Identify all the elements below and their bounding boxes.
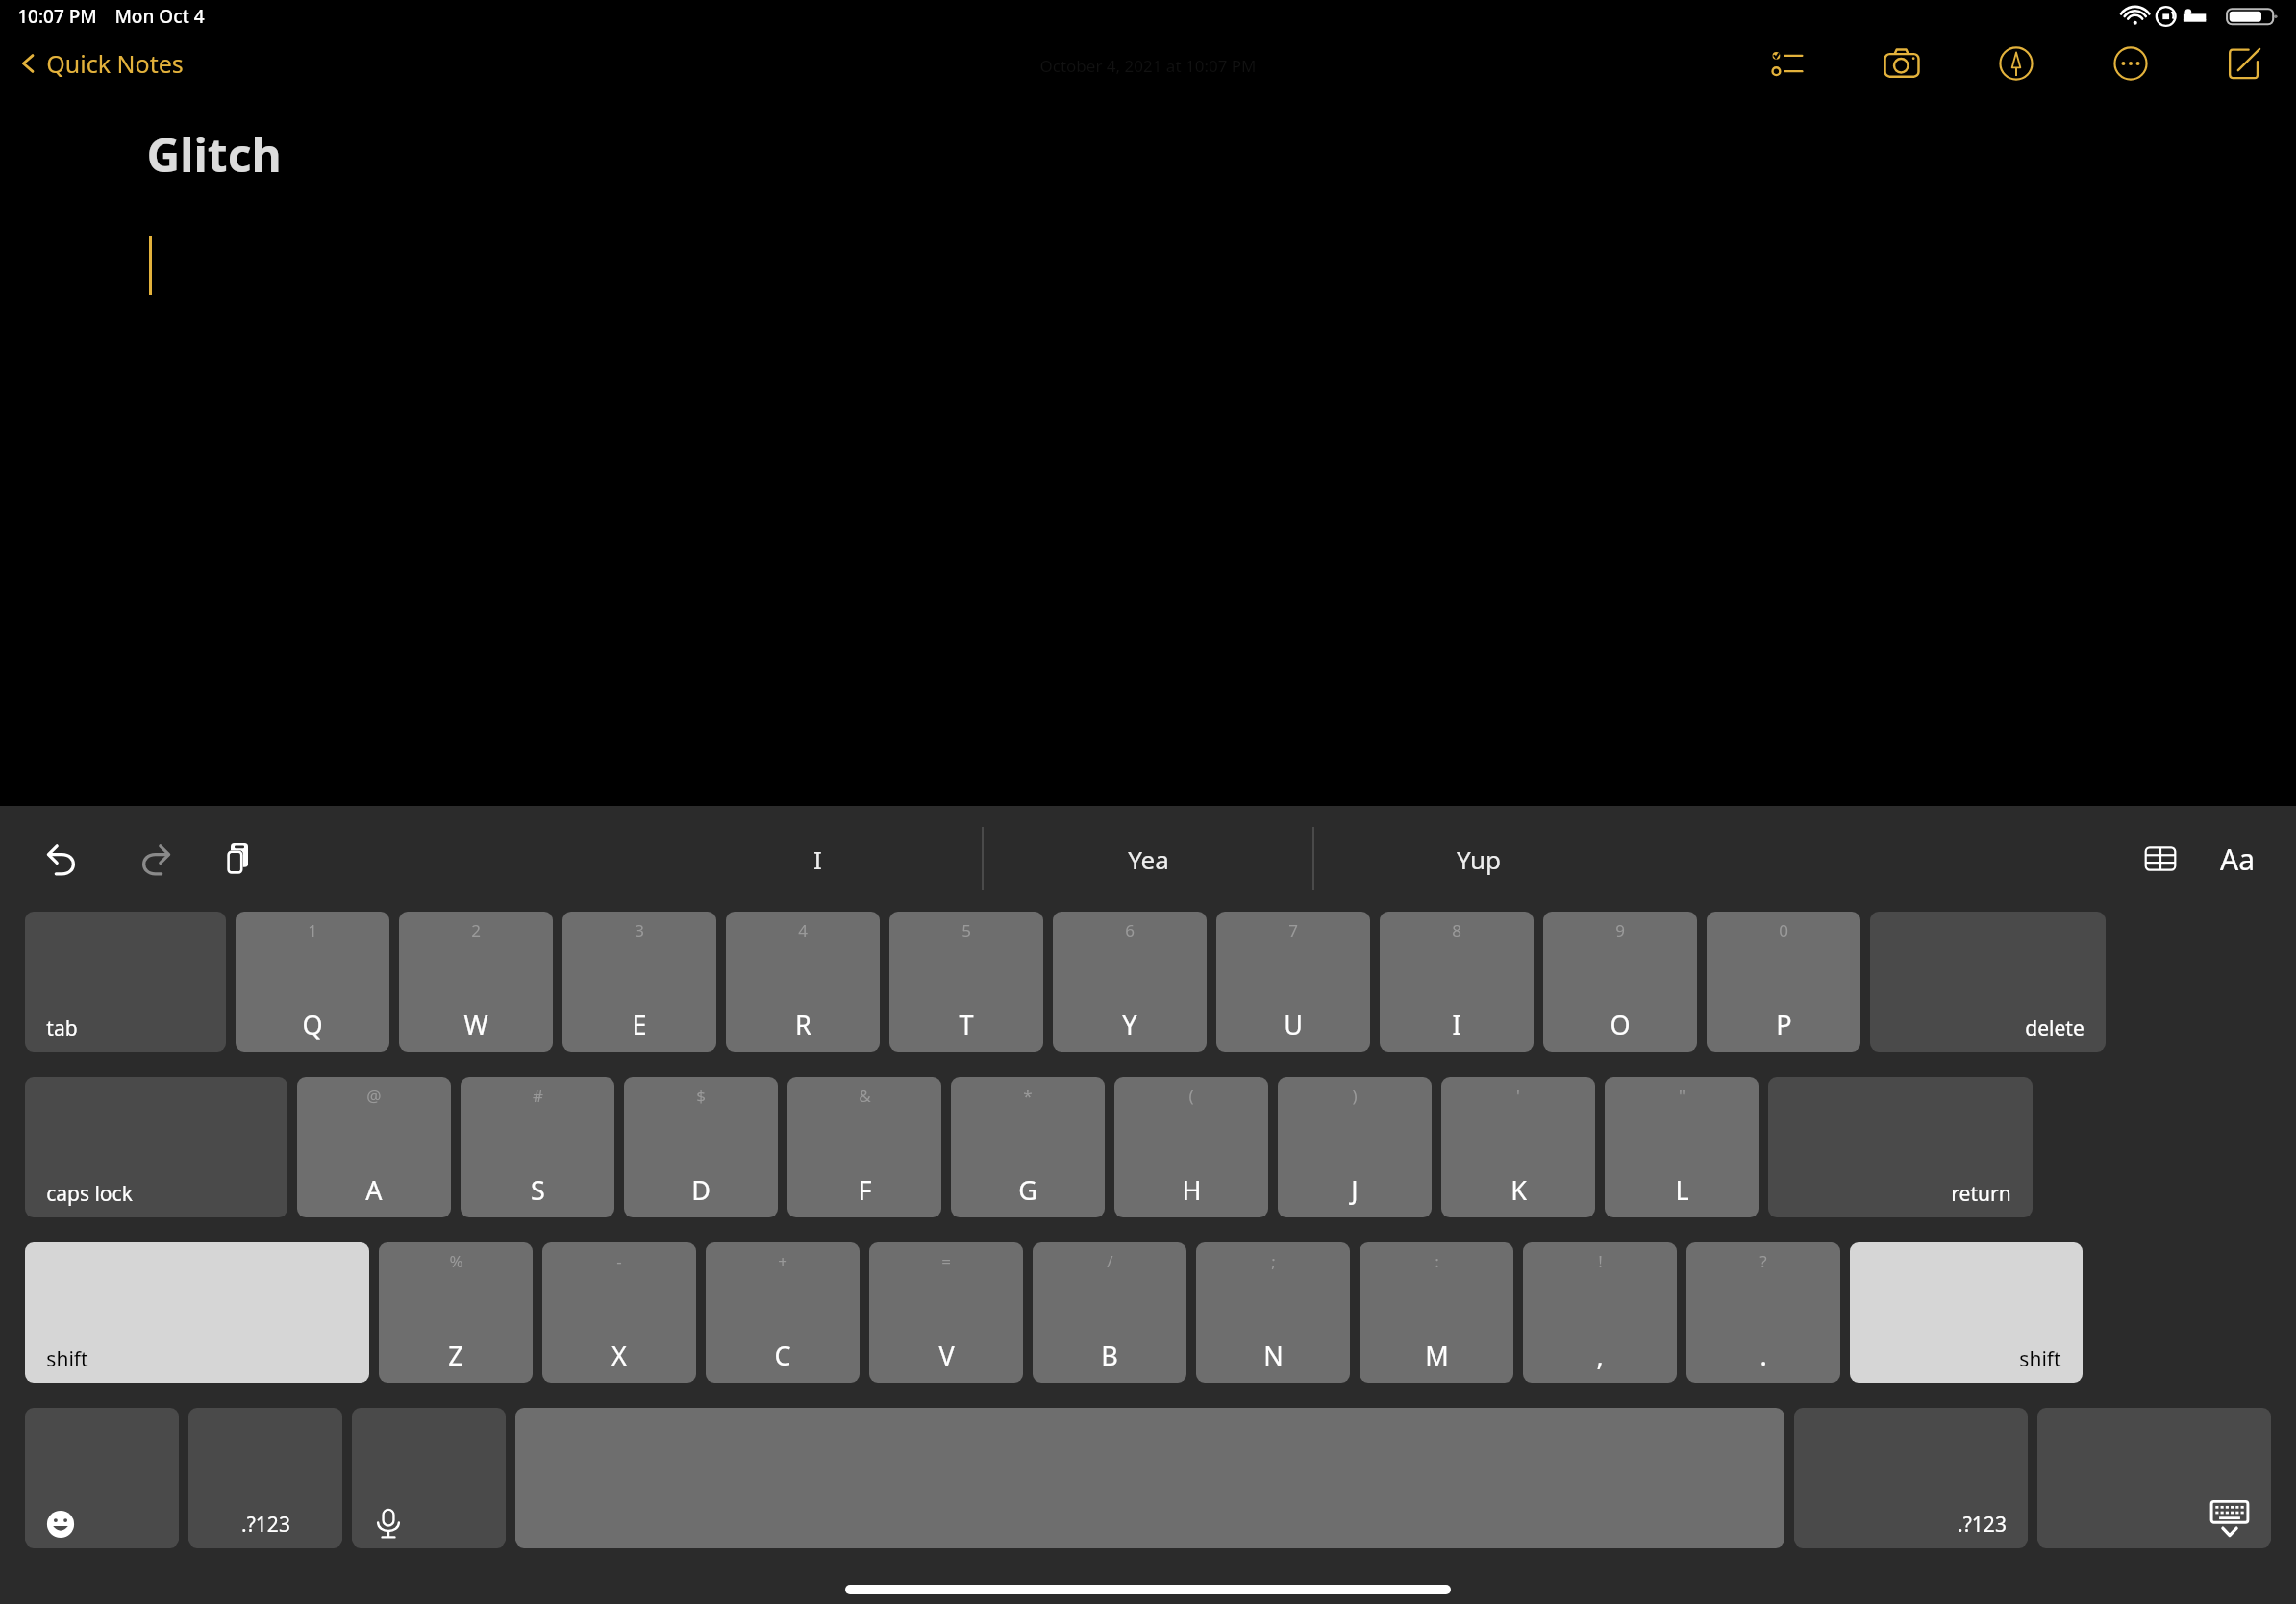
- staticText: D: [691, 1172, 711, 1208]
- staticText: 4: [798, 919, 808, 941]
- staticText: V: [938, 1338, 955, 1373]
- staticText: +: [778, 1250, 787, 1272]
- staticText: =: [941, 1250, 951, 1272]
- staticText: October 4, 2021 at 10:07 PM: [1039, 55, 1257, 77]
- staticText: 2: [471, 919, 481, 941]
- button[interactable]: .?123: [1794, 1408, 2028, 1548]
- button[interactable]: Yup: [1314, 806, 1643, 912]
- staticText: .: [1759, 1338, 1767, 1373]
- button[interactable]: +: [706, 1242, 860, 1383]
- button[interactable]: shift: [25, 1242, 369, 1383]
- staticText: caps lock: [46, 1180, 133, 1208]
- button[interactable]: Emoji: [25, 1408, 179, 1548]
- button[interactable]: tab: [25, 912, 226, 1052]
- staticText: !: [1598, 1250, 1603, 1272]
- staticText: Q: [302, 1007, 323, 1042]
- staticText: K: [1510, 1172, 1527, 1208]
- button[interactable]: $: [624, 1077, 778, 1217]
- staticText: $: [696, 1085, 706, 1107]
- staticText: 0: [1779, 919, 1788, 941]
- button[interactable]: -: [542, 1242, 696, 1383]
- button[interactable]: 7: [1216, 912, 1370, 1052]
- staticText: S: [531, 1172, 545, 1208]
- button[interactable]: Dictation: [352, 1408, 506, 1548]
- button[interactable]: !: [1523, 1242, 1677, 1383]
- staticText: F: [858, 1172, 872, 1208]
- staticText: E: [632, 1007, 647, 1042]
- button[interactable]: :: [1360, 1242, 1513, 1383]
- staticText: Glitch: [146, 123, 282, 186]
- staticText: tab: [46, 1015, 78, 1042]
- button[interactable]: Quick Notes: [15, 43, 187, 84]
- button[interactable]: (: [1114, 1077, 1268, 1217]
- button[interactable]: =: [869, 1242, 1023, 1383]
- button[interactable]: 3: [562, 912, 716, 1052]
- staticText: (: [1188, 1085, 1194, 1107]
- button[interactable]: ': [1441, 1077, 1595, 1217]
- button[interactable]: 9: [1543, 912, 1697, 1052]
- button[interactable]: ;: [1196, 1242, 1350, 1383]
- staticText: -: [616, 1250, 622, 1272]
- button[interactable]: Camera: [1870, 33, 1934, 94]
- button[interactable]: 1: [236, 912, 389, 1052]
- staticText: &: [859, 1085, 871, 1107]
- button[interactable]: delete: [1870, 912, 2106, 1052]
- staticText: shift: [2019, 1345, 2061, 1373]
- staticText: %: [449, 1250, 463, 1272]
- staticText: @: [366, 1085, 382, 1107]
- button[interactable]: #: [461, 1077, 614, 1217]
- button[interactable]: Checklist: [1756, 33, 1819, 94]
- button[interactable]: %: [379, 1242, 533, 1383]
- button[interactable]: I: [653, 806, 982, 912]
- staticText: Yea: [1128, 842, 1169, 876]
- staticText: /: [1107, 1250, 1113, 1272]
- button[interactable]: More: [2099, 33, 2162, 94]
- staticText: shift: [46, 1345, 88, 1373]
- button[interactable]: ": [1605, 1077, 1759, 1217]
- button[interactable]: ): [1278, 1077, 1432, 1217]
- button[interactable]: 5: [889, 912, 1043, 1052]
- button[interactable]: shift: [1850, 1242, 2083, 1383]
- staticText: ': [1516, 1085, 1520, 1107]
- staticText: X: [611, 1338, 627, 1373]
- staticText: N: [1263, 1338, 1284, 1373]
- staticText: 1: [308, 919, 317, 941]
- button[interactable]: 0: [1707, 912, 1860, 1052]
- button[interactable]: Paste: [208, 828, 269, 890]
- staticText: #: [533, 1085, 543, 1107]
- button[interactable]: caps lock: [25, 1077, 287, 1217]
- button[interactable]: return: [1768, 1077, 2033, 1217]
- staticText: I: [813, 842, 822, 876]
- button[interactable]: ?: [1686, 1242, 1840, 1383]
- button[interactable]: 8: [1380, 912, 1534, 1052]
- button[interactable]: &: [787, 1077, 941, 1217]
- button[interactable]: Hide keyboard: [2037, 1408, 2271, 1548]
- button[interactable]: 4: [726, 912, 880, 1052]
- staticText: Aa: [2220, 840, 2255, 879]
- staticText: 9: [1615, 919, 1625, 941]
- button[interactable]: /: [1033, 1242, 1186, 1383]
- staticText: P: [1776, 1007, 1792, 1042]
- button[interactable]: 6: [1053, 912, 1207, 1052]
- staticText: O: [1610, 1007, 1631, 1042]
- button[interactable]: *: [951, 1077, 1105, 1217]
- button[interactable]: Table: [2131, 829, 2190, 889]
- staticText: ,: [1596, 1338, 1604, 1373]
- button[interactable]: Format: [2208, 829, 2267, 889]
- staticText: .?123: [1958, 1511, 2007, 1539]
- button[interactable]: .?123: [188, 1408, 342, 1548]
- button[interactable]: Yea: [984, 806, 1312, 912]
- button[interactable]: Markup: [1984, 33, 2048, 94]
- button[interactable]: @: [297, 1077, 451, 1217]
- button[interactable]: Redo: [121, 828, 183, 890]
- button[interactable]: Undo: [35, 828, 96, 890]
- staticText: A: [365, 1172, 383, 1208]
- button[interactable]: 2: [399, 912, 553, 1052]
- staticText: ;: [1271, 1250, 1276, 1272]
- button[interactable]: New Note: [2213, 33, 2277, 94]
- staticText: .?123: [241, 1511, 290, 1539]
- staticText: 5: [961, 919, 971, 941]
- staticText: H: [1182, 1172, 1202, 1208]
- staticText: 10:07 PM: [17, 4, 97, 29]
